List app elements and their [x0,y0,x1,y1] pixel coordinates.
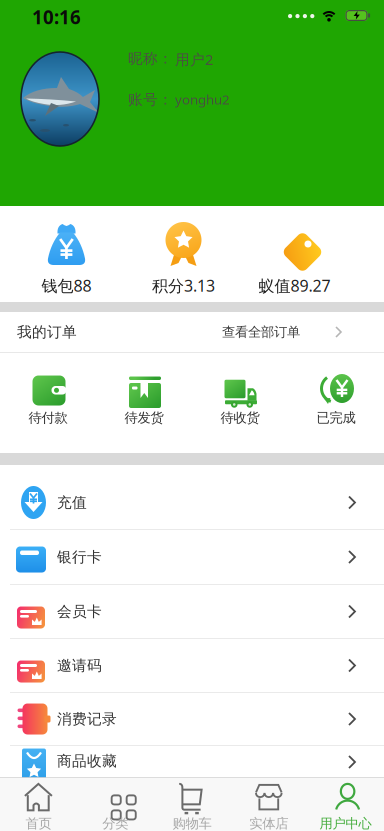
staticText: 待发货 [124,409,163,426]
button[interactable]: 邀请码 [0,639,384,692]
staticText: 会员卡 [57,602,102,620]
button[interactable]: 首页 [0,778,77,831]
staticText: 查看全部订单 [222,324,300,340]
staticText: 分类 [102,815,128,831]
button[interactable]: 待发货 [96,353,192,453]
staticText: 首页 [25,815,51,831]
staticText: 账号： [128,90,173,108]
staticText: 实体店 [249,815,288,831]
button[interactable]: 已完成 [288,353,384,453]
staticText: 10:16 [32,4,81,29]
button[interactable]: 待付款 [0,353,96,453]
button[interactable]: 积分3.13 [125,206,242,302]
staticText: 昵称： [128,49,173,67]
button[interactable]: 分类 [77,778,154,831]
button[interactable]: 待收货 [192,353,288,453]
button[interactable]: 钱包88 [8,206,125,302]
button[interactable]: 充值 [0,476,384,529]
staticText: 蚁值89.27 [258,275,330,296]
staticText: 银行卡 [57,548,102,566]
staticText: 已完成 [316,409,355,426]
button[interactable]: 我的订单 [0,312,384,352]
staticText: 购物车 [172,815,211,831]
staticText: 积分3.13 [152,275,215,296]
staticText: 待付款 [28,409,67,426]
staticText: 邀请码 [57,656,102,674]
button[interactable]: 银行卡 [0,530,384,584]
button[interactable]: 会员卡 [0,585,384,638]
staticText: 充值 [57,493,87,511]
button[interactable]: 购物车 [154,778,230,831]
staticText: 用户中心 [320,815,372,831]
button[interactable]: 消费记录 [0,693,384,745]
button[interactable]: 蚁值89.27 [242,206,359,302]
button[interactable]: 商品收藏 [0,746,384,800]
staticText: 钱包88 [41,275,91,296]
staticText: 我的订单 [17,323,77,341]
staticText: 用户2 [175,49,213,69]
staticText: yonghu2 [175,90,230,108]
staticText: 消费记录 [57,710,117,728]
staticText: 待收货 [220,409,259,426]
staticText: 商品收藏 [57,752,117,770]
button[interactable]: 实体店 [230,778,307,831]
button[interactable]: 用户中心 [307,778,384,831]
